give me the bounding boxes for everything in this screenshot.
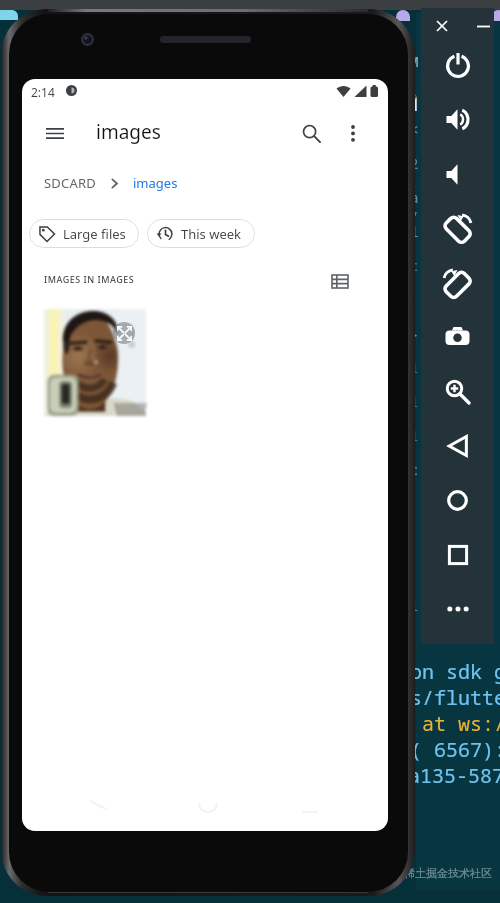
staticText: <: [410, 120, 419, 139]
staticText: s/flutter: [410, 684, 500, 711]
staticText: a/: [410, 188, 421, 222]
button[interactable]: SDCARD: [44, 168, 96, 198]
staticText: images: [133, 174, 178, 192]
button[interactable]: Rotate left: [421, 201, 494, 255]
staticText: at ws:/: [410, 710, 500, 737]
staticText: l: [410, 222, 419, 241]
staticText: :: [410, 290, 419, 309]
staticText: M: [410, 52, 419, 71]
button[interactable]: Zoom: [421, 364, 494, 418]
button[interactable]: Minimize: [473, 15, 494, 37]
staticText: M: [402, 92, 419, 117]
button[interactable]: Take screenshot: [421, 310, 494, 364]
button[interactable]: Large files: [29, 219, 139, 248]
button[interactable]: Close: [431, 15, 453, 37]
staticText: c: [410, 460, 419, 479]
button[interactable]: Rotate right: [421, 256, 494, 310]
button[interactable]: Switch to list view: [325, 266, 355, 296]
button[interactable]: images: [133, 168, 178, 198]
staticText: on sdk gp: [410, 658, 500, 685]
staticText: xm: [400, 48, 416, 66]
button[interactable]: Expand image: [44, 309, 146, 416]
button[interactable]: More: [421, 582, 494, 636]
button[interactable]: Overview: [421, 528, 494, 582]
button[interactable]: Home: [421, 473, 494, 527]
button[interactable]: Search: [294, 116, 328, 150]
staticText: ( 6567):: [410, 736, 500, 763]
staticText: IMAGES IN IMAGES: [44, 273, 135, 285]
staticText: |: [410, 562, 419, 581]
staticText: 1: [410, 358, 419, 377]
staticText: :: [410, 494, 419, 513]
staticText: This week: [181, 225, 242, 243]
staticText: SDCARD: [44, 174, 96, 192]
staticText: i: [410, 596, 419, 615]
staticText: c: [410, 256, 419, 275]
button[interactable]: Back: [421, 419, 494, 473]
staticText: 1: [410, 392, 419, 411]
staticText: images: [96, 119, 161, 145]
staticText: 2,: [410, 154, 421, 188]
staticText: a135-587e: [408, 762, 500, 789]
staticText: 2:14: [31, 84, 55, 100]
staticText: »: [410, 86, 419, 105]
staticText: }: [410, 324, 419, 343]
staticText: |: [410, 528, 419, 547]
button[interactable]: Power: [421, 38, 494, 92]
staticText: Large files: [63, 225, 126, 243]
button[interactable]: Volume up: [421, 92, 494, 146]
staticText: 稀土掘金技术社区: [404, 866, 492, 880]
button[interactable]: Navigation menu: [38, 116, 72, 150]
button[interactable]: Volume down: [421, 147, 494, 201]
button[interactable]: Expand image: [113, 322, 135, 344]
button[interactable]: More options: [336, 116, 370, 150]
staticText: 1: [410, 426, 419, 445]
button[interactable]: This week: [147, 219, 255, 248]
